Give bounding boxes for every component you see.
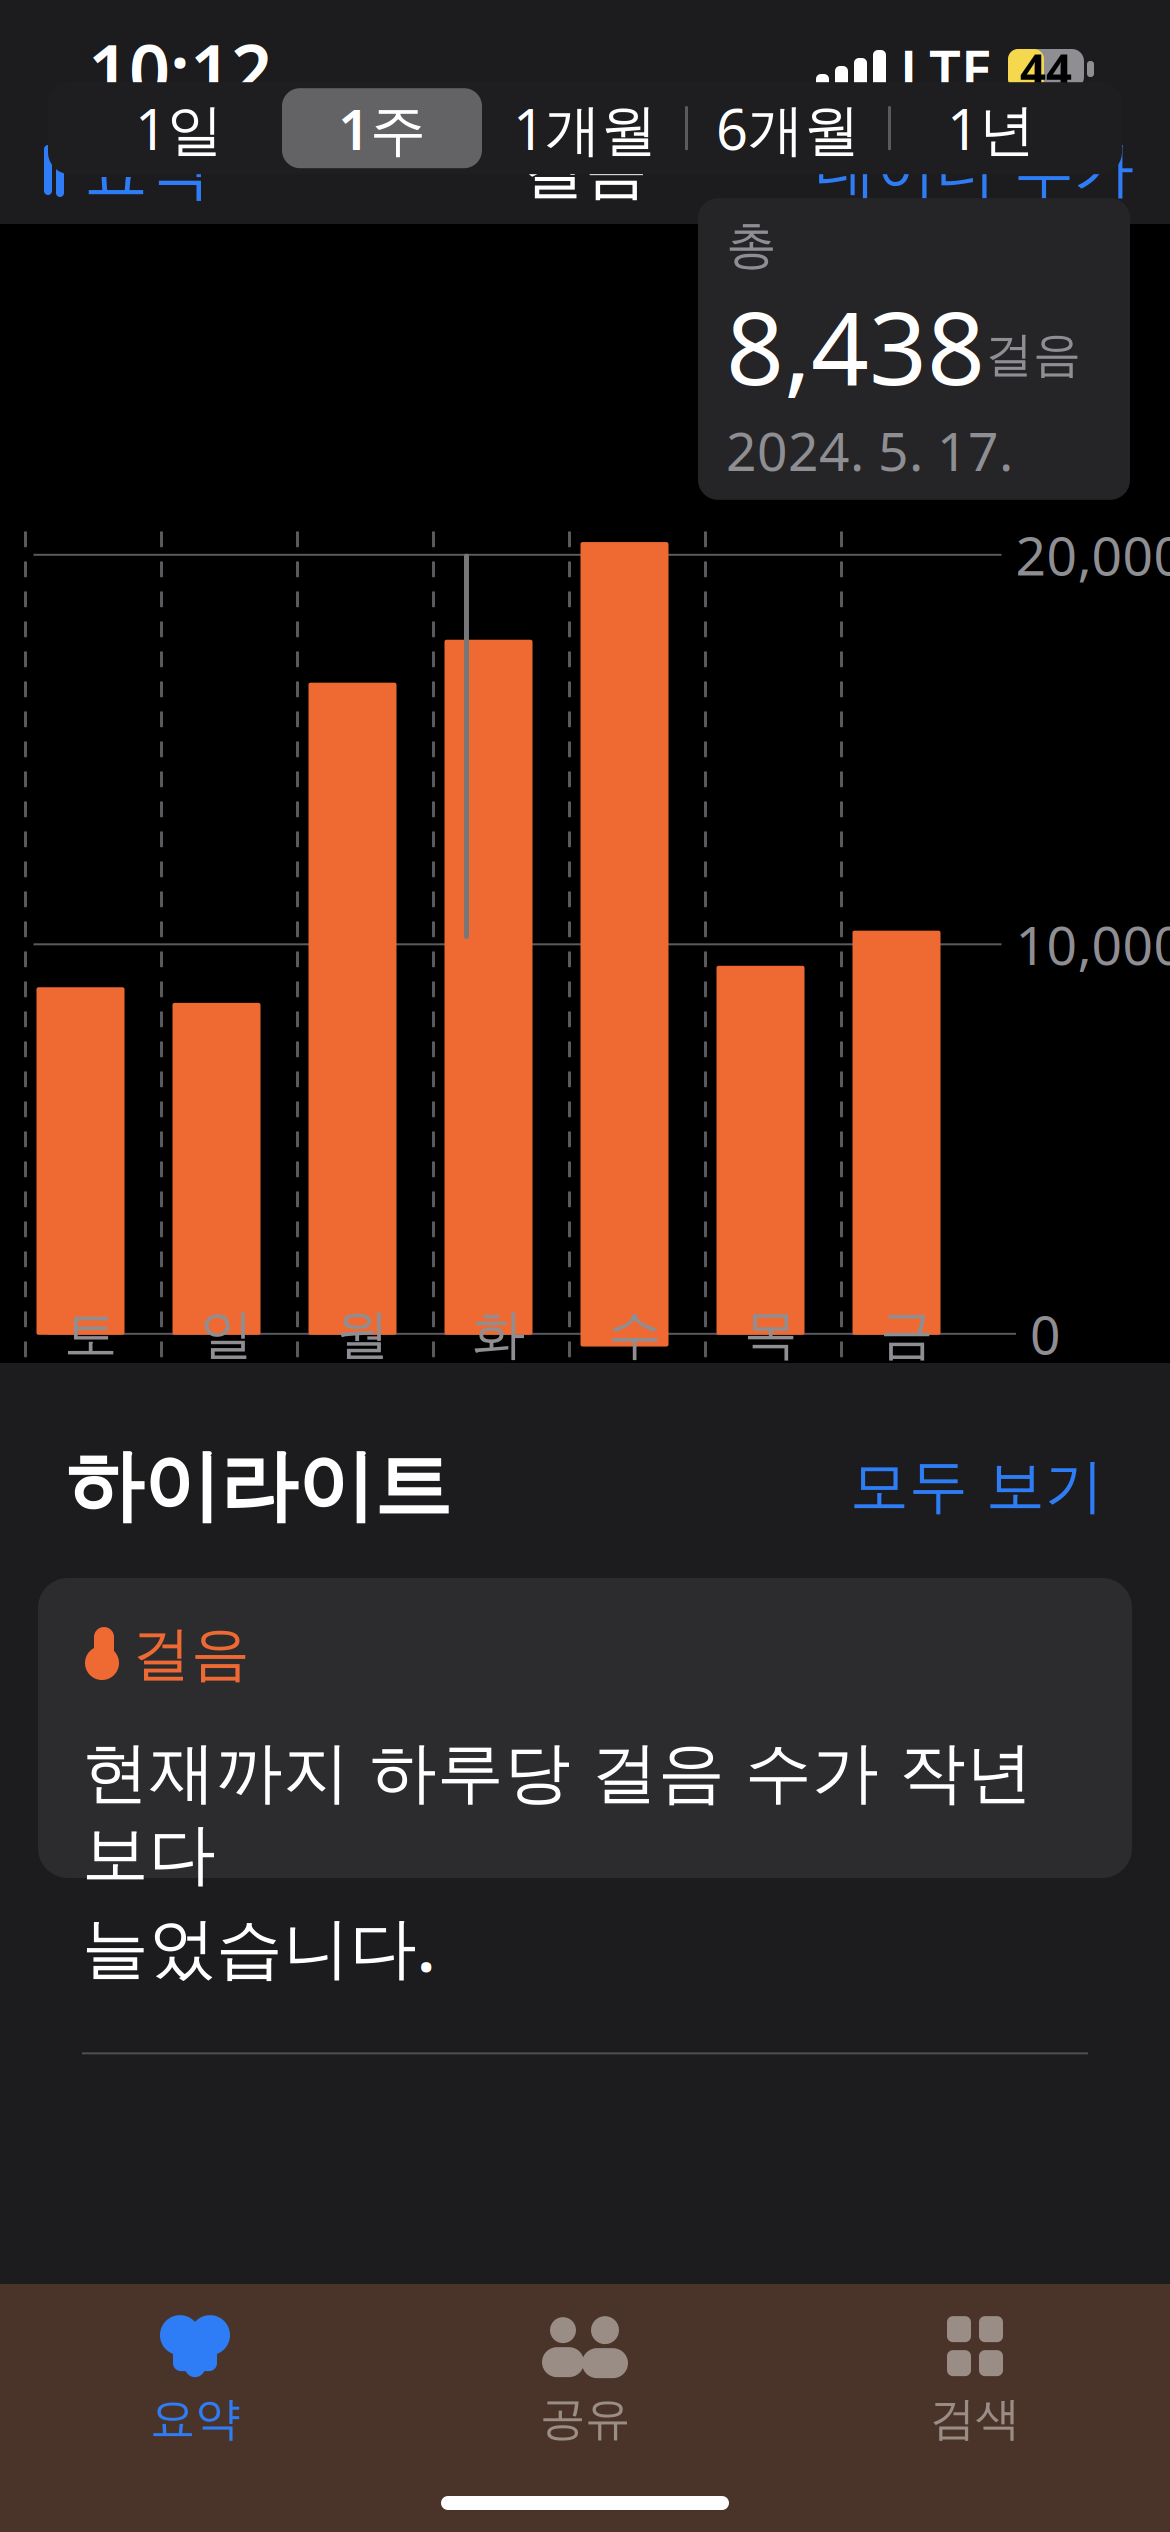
staticText: 공유 (540, 2391, 630, 2447)
staticText: 1개월 (513, 91, 657, 165)
staticText: 늘었습니다. (82, 1902, 435, 1990)
staticText: 토 (64, 1302, 117, 1368)
staticText: 화 (472, 1302, 525, 1368)
staticText: 하이라이트 (66, 1439, 451, 1534)
staticText: 수 (608, 1302, 661, 1368)
button[interactable]: 1주 (282, 88, 482, 168)
button[interactable]: 1년 (891, 88, 1091, 168)
button[interactable]: 1개월 (485, 88, 685, 168)
staticText: 0 (1030, 1298, 1061, 1369)
button[interactable]: 1일 (79, 88, 279, 168)
staticText: 1년 (947, 91, 1035, 165)
staticText: 20,000 (1015, 519, 1170, 590)
staticText: 걸음 (522, 131, 648, 208)
staticText: 월 (336, 1302, 389, 1368)
staticText: 일 (200, 1302, 253, 1368)
staticText: 검색 (930, 2391, 1020, 2447)
staticText: 현재까지 하루당 걸음 수가 작년보다 (82, 1732, 1033, 1896)
staticText: 데이터 추가 (816, 133, 1134, 207)
staticText: 1주 (338, 91, 426, 165)
staticText: 1일 (135, 91, 223, 165)
button[interactable]: 요약 (0, 2306, 390, 2456)
button[interactable]: 데이터 추가 (806, 119, 1144, 221)
staticText: 요약 (84, 131, 212, 209)
staticText: 2024. 5. 17. (726, 415, 1013, 486)
button[interactable]: 요약 (26, 117, 222, 223)
staticText: 걸음 (985, 325, 1081, 384)
staticText: 44 (1020, 39, 1072, 99)
button[interactable]: 6개월 (688, 88, 888, 168)
staticText: LTE (900, 32, 992, 106)
staticText: 총 (726, 214, 777, 276)
staticText: 6개월 (716, 91, 860, 165)
staticText: 걸음 (132, 1618, 250, 1690)
button[interactable]: 걸음 (38, 1578, 1132, 1878)
staticText: 계산할 수 없음 (704, 1436, 1094, 1508)
button[interactable]: 공유 (390, 2306, 780, 2456)
staticText: 모두 보기 (850, 1450, 1104, 1523)
button[interactable]: 검색 (780, 2306, 1170, 2456)
staticText: 요약 (150, 2391, 240, 2447)
staticText: 금 (880, 1302, 933, 1368)
staticText: 10,000 (1015, 909, 1170, 980)
staticText: 목 (744, 1302, 797, 1368)
staticText: 추세 (76, 1436, 194, 1508)
button[interactable]: 모두 보기 (832, 1440, 1104, 1533)
staticText: 10:12 (88, 21, 272, 117)
staticText: 8,438 (726, 278, 985, 413)
